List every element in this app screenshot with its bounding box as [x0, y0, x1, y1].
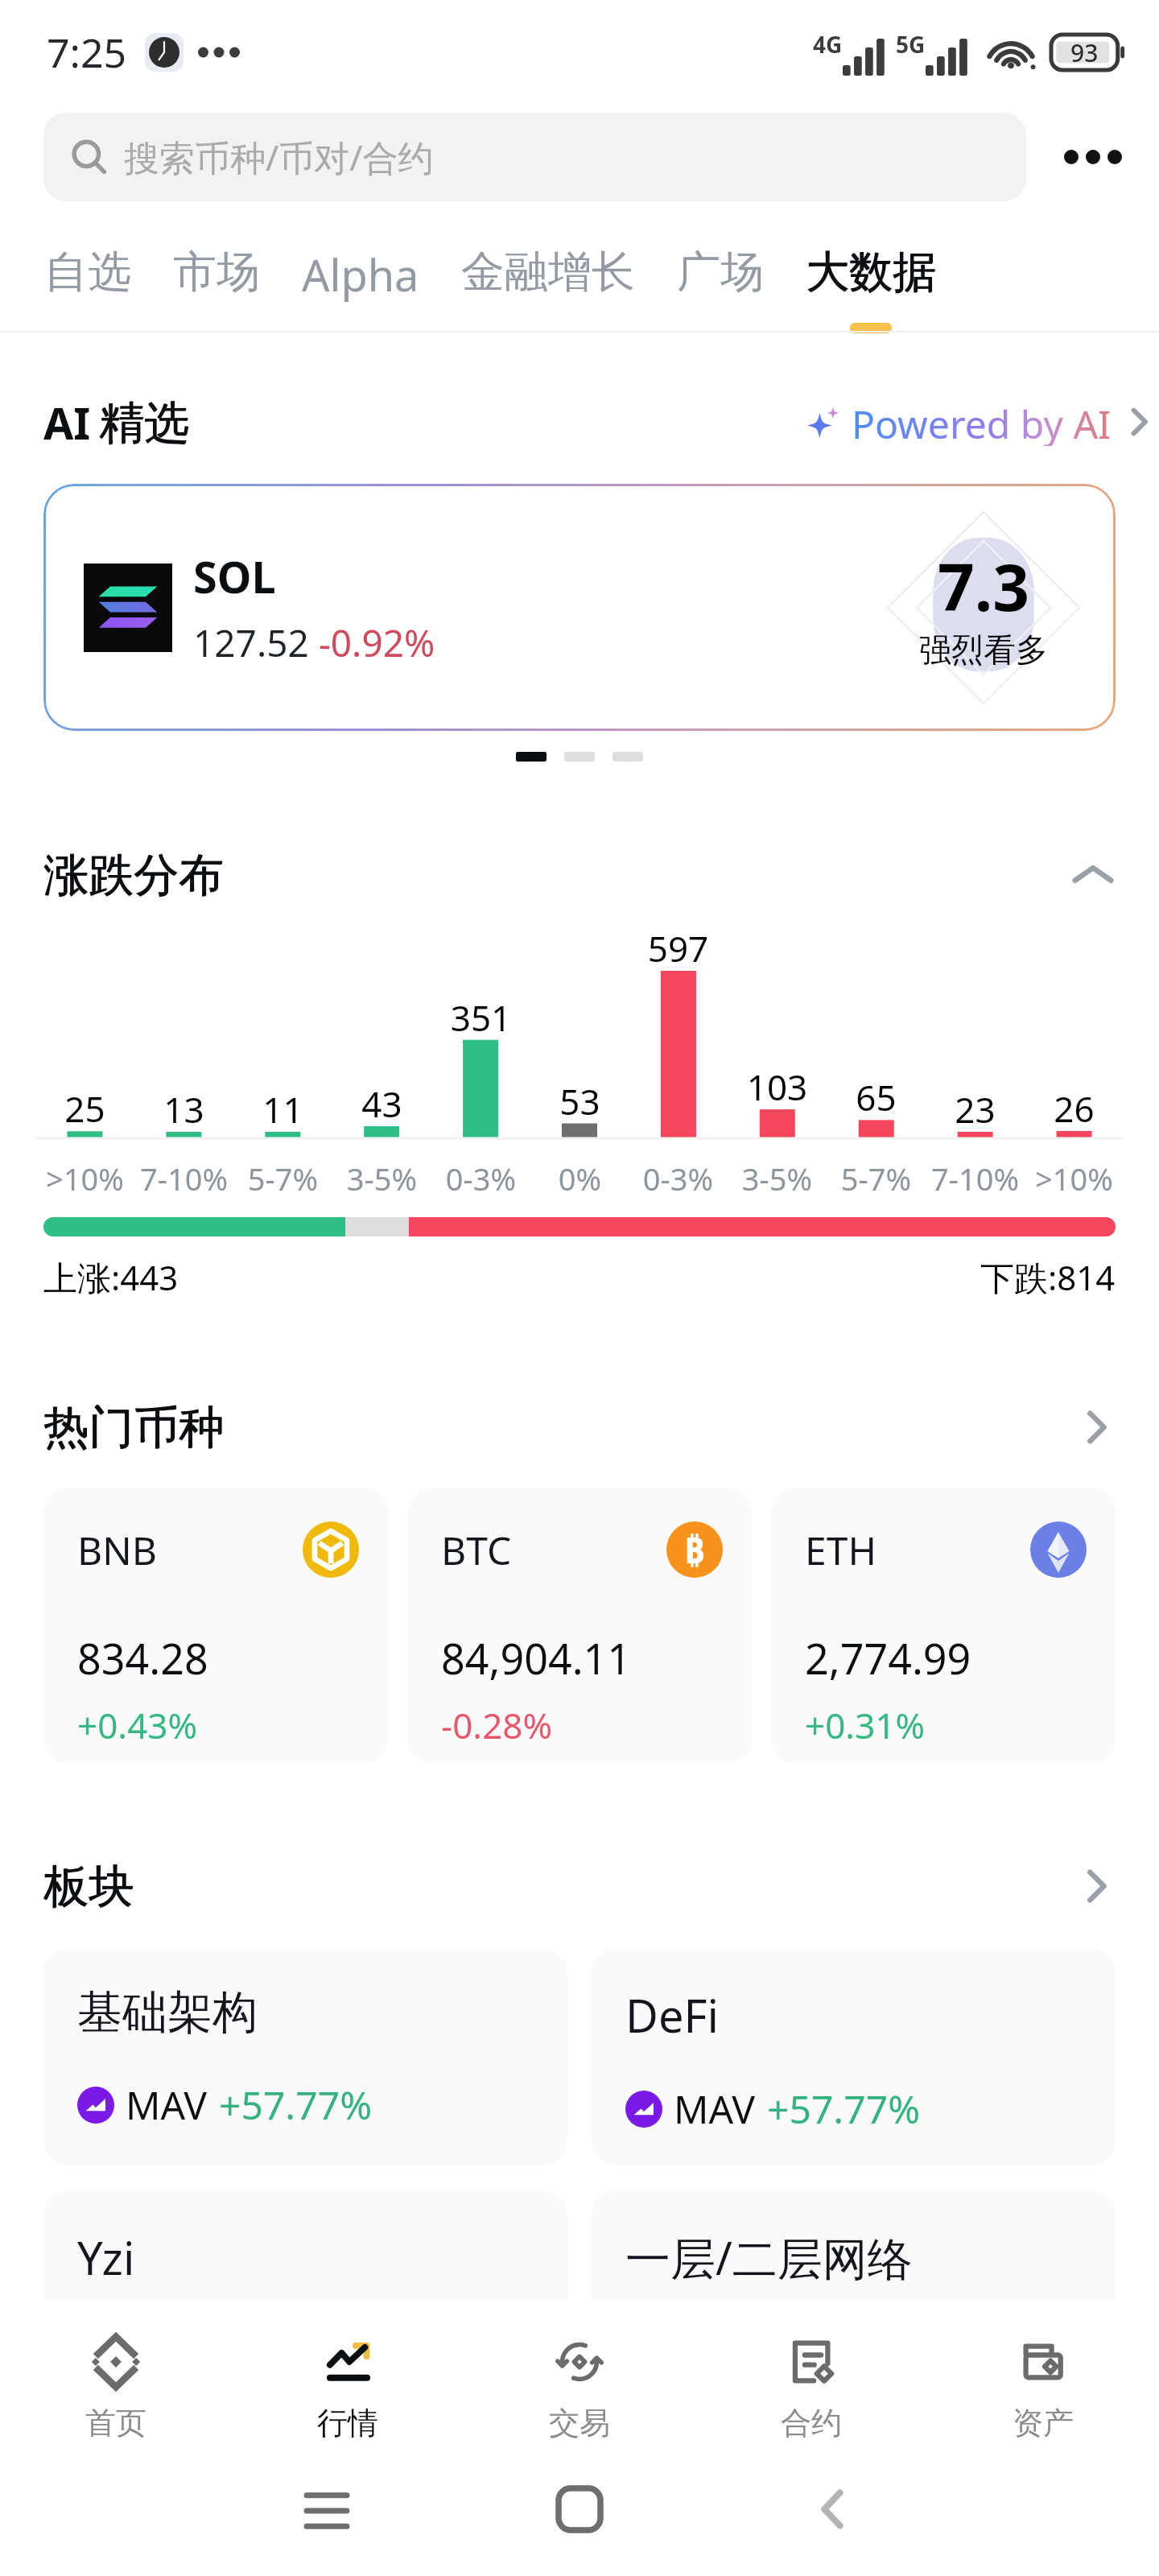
staticText: 精选: [99, 395, 189, 452]
staticText: 行情: [317, 2404, 378, 2439]
staticText: 板块: [44, 1858, 134, 1914]
staticText: 26: [1025, 1084, 1124, 1133]
staticText: ETH: [805, 1524, 876, 1576]
staticText: BNB: [77, 1524, 157, 1576]
staticText: 市场: [173, 245, 260, 299]
staticText: 43: [332, 1080, 431, 1128]
staticText: 2,774.99: [805, 1629, 971, 1686]
staticText: 0-3%: [431, 1158, 530, 1199]
button[interactable]: 板块: [43, 1858, 1116, 1914]
staticText: 金融增长: [461, 245, 635, 299]
button[interactable]: 首页: [0, 2318, 232, 2439]
button[interactable]: 自选: [23, 232, 152, 333]
button[interactable]: 7.3: [43, 484, 1116, 731]
staticText: 下跌:814: [980, 1254, 1116, 1300]
staticText: 351: [431, 993, 530, 1042]
button[interactable]: 行情: [232, 2318, 464, 2439]
staticText: 65: [827, 1073, 926, 1121]
staticText: -0.92%: [319, 617, 435, 668]
button[interactable]: BTC: [407, 1488, 752, 1764]
button[interactable]: Powered by AI: [805, 398, 1155, 446]
button[interactable]: 基础架构: [43, 1949, 567, 2165]
staticText: 首页: [85, 2404, 146, 2439]
button[interactable]: More options: [1026, 113, 1159, 201]
staticText: 25: [35, 1084, 134, 1133]
staticText: 自选: [44, 245, 131, 299]
staticText: 7-10%: [926, 1158, 1025, 1199]
button[interactable]: 广场: [656, 232, 785, 333]
staticText: 一层/二层网络: [625, 2227, 913, 2288]
staticText: 上涨:443: [43, 1254, 179, 1300]
staticText: +0.31%: [805, 1701, 926, 1749]
button[interactable]: BNB: [43, 1488, 388, 1764]
staticText: MAV: [674, 2083, 756, 2135]
staticText: 0%: [530, 1158, 629, 1199]
staticText: MAV: [126, 2079, 208, 2131]
button[interactable]: 市场: [152, 232, 281, 333]
staticText: 7.3: [938, 542, 1029, 630]
staticText: 597: [629, 924, 728, 972]
staticText: 资产: [1013, 2404, 1074, 2439]
staticText: 板块: [43, 1859, 134, 1915]
staticText: 精选: [99, 394, 189, 452]
button[interactable]: Page 1: [516, 752, 547, 762]
button[interactable]: ETH: [771, 1488, 1116, 1764]
staticText: 13: [134, 1085, 233, 1133]
staticText: 53: [530, 1077, 629, 1125]
button[interactable]: 金融增长: [440, 232, 656, 333]
staticText: 7-10%: [134, 1158, 233, 1199]
staticText: DeFi: [625, 1984, 719, 2046]
button[interactable]: 合约: [695, 2318, 927, 2439]
button[interactable]: 交易: [464, 2318, 695, 2439]
staticText: 大数据: [806, 245, 936, 299]
staticText: +57.77%: [767, 2325, 921, 2377]
staticText: 精选: [100, 394, 190, 452]
button[interactable]: 大数据: [785, 232, 957, 333]
button[interactable]: Page 3: [612, 752, 643, 762]
staticText: Yzi: [77, 2227, 135, 2288]
staticText: 3-5%: [332, 1158, 431, 1199]
staticText: 103: [728, 1063, 827, 1111]
staticText: SOL: [193, 547, 276, 606]
staticText: 交易: [549, 2404, 610, 2439]
staticText: Alpha: [302, 245, 419, 304]
staticText: MAV: [126, 2325, 208, 2377]
staticText: -0.28%: [441, 1701, 553, 1749]
button[interactable]: Alpha: [281, 232, 440, 333]
button[interactable]: Back: [811, 2487, 855, 2531]
staticText: 93: [1070, 36, 1099, 69]
staticText: BTC: [441, 1524, 512, 1576]
staticText: 合约: [781, 2404, 842, 2439]
other: Collapse: [1070, 852, 1116, 898]
staticText: 5G: [896, 29, 926, 60]
button[interactable]: 资产: [927, 2318, 1159, 2439]
staticText: 4G: [813, 29, 843, 60]
button[interactable]: Recents: [306, 2490, 348, 2532]
button[interactable]: 涨跌分布: [43, 847, 1116, 903]
button[interactable]: DeFi: [592, 1949, 1116, 2165]
staticText: 板块: [43, 1858, 134, 1914]
button[interactable]: 热门币种: [43, 1399, 1116, 1455]
staticText: 127.52: [193, 617, 309, 668]
staticText: 涨跌分布: [43, 847, 224, 903]
staticText: 11: [233, 1085, 332, 1133]
staticText: 广场: [677, 245, 764, 299]
button[interactable]: 一层/二层网络: [592, 2191, 1116, 2408]
button[interactable]: Yzi: [43, 2191, 567, 2408]
staticText: >10%: [1025, 1158, 1124, 1199]
staticText: 强烈看多: [919, 630, 1048, 670]
staticText: Powered by AI: [852, 398, 1112, 446]
button[interactable]: Home: [559, 2488, 600, 2530]
button[interactable]: 搜索币种/币对/合约: [43, 113, 1026, 201]
staticText: +57.77%: [219, 2325, 373, 2377]
staticText: 热门币种: [43, 1399, 224, 1455]
staticText: 大数据: [806, 245, 937, 299]
staticText: 涨跌分布: [43, 848, 224, 904]
staticText: 7:25: [47, 25, 127, 80]
staticText: 涨跌分布: [44, 847, 225, 903]
staticText: AI: [43, 393, 91, 452]
button[interactable]: Page 2: [564, 752, 595, 762]
staticText: 5-7%: [827, 1158, 926, 1199]
staticText: 基础架构: [77, 1984, 258, 2041]
